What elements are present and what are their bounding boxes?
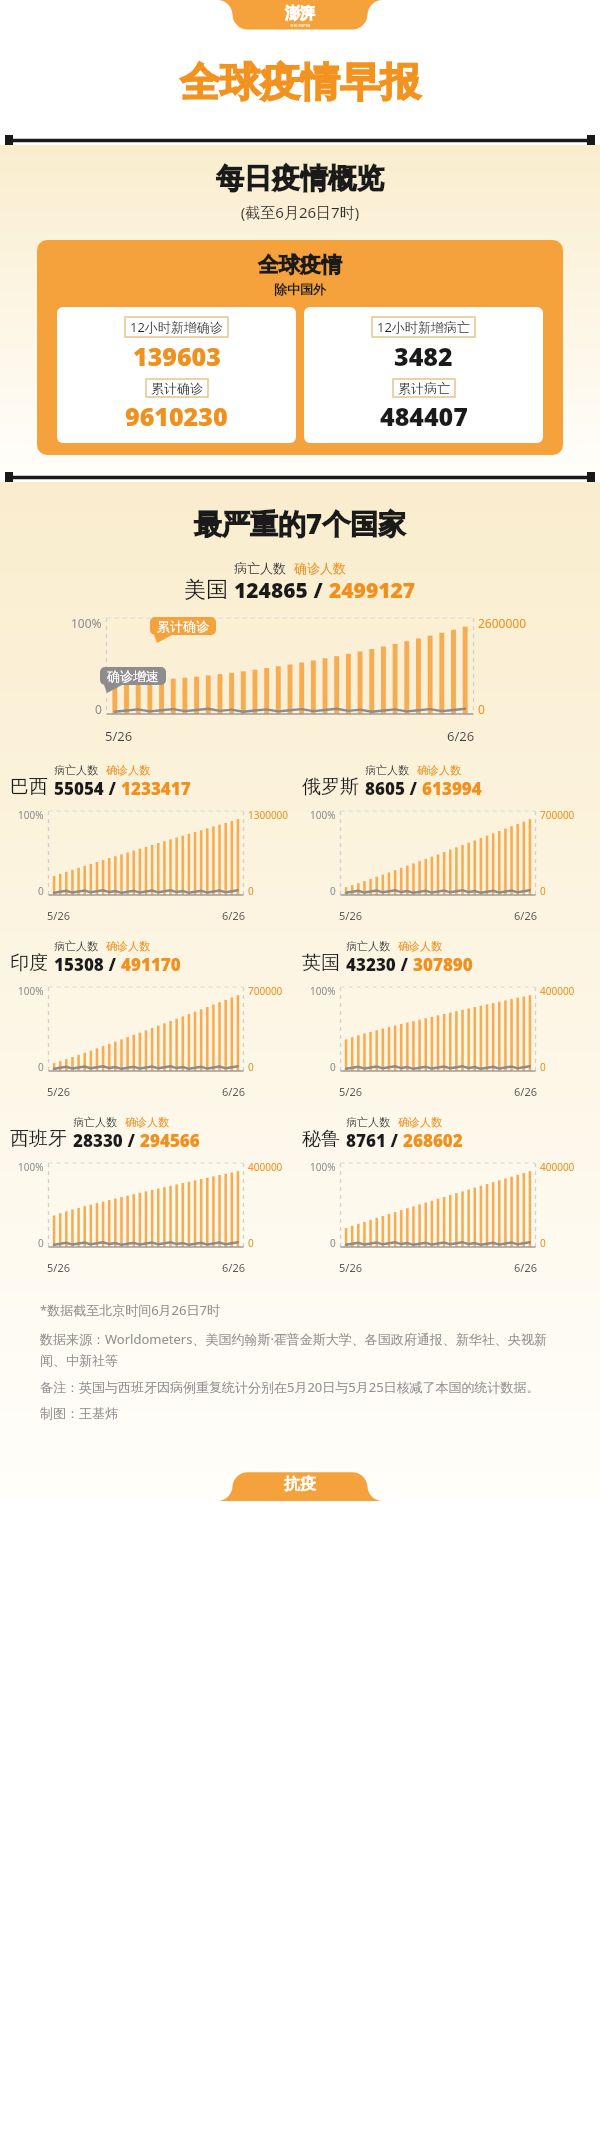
staticText: 100% <box>71 615 102 631</box>
staticText: 1300000 <box>248 808 289 822</box>
staticText: 28330 <box>73 1129 123 1152</box>
staticText: 0 <box>540 1060 546 1074</box>
staticText: 确诊人数 <box>106 939 150 953</box>
staticText: 病亡人数 <box>54 763 98 777</box>
staticText: 307890 <box>413 953 473 976</box>
button[interactable]: 俄罗斯 <box>302 763 590 923</box>
staticText: / <box>308 576 329 605</box>
staticText: 0 <box>248 884 254 898</box>
button[interactable]: 英国 <box>302 939 590 1099</box>
staticText: 全球疫情早报 <box>180 57 420 107</box>
staticText: 43230 <box>346 953 396 976</box>
staticText: 确诊人数 <box>125 1115 169 1129</box>
button[interactable]: 巴西 <box>10 763 298 923</box>
staticText: 累计确诊 <box>151 380 203 396</box>
staticText: 100% <box>18 808 44 822</box>
button[interactable]: 秘鲁 <box>302 1115 590 1275</box>
staticText: 病亡人数 <box>54 939 98 953</box>
staticText: 0 <box>330 884 336 898</box>
staticText: 抗疫 <box>284 1474 316 1494</box>
staticText: 6/26 <box>222 1260 245 1275</box>
staticText: 5/26 <box>339 908 362 923</box>
staticText: 最严重的7个国家 <box>0 504 600 542</box>
staticText: 9610230 <box>125 399 228 433</box>
staticText: 5/26 <box>47 1260 70 1275</box>
staticText: 5/26 <box>47 1084 70 1099</box>
staticText: 0 <box>95 701 102 717</box>
staticText: 6/26 <box>447 727 475 745</box>
staticText: 12小时新增确诊 <box>130 318 223 336</box>
staticText: 268602 <box>403 1129 463 1152</box>
staticText: 100% <box>310 1160 336 1174</box>
staticText: / <box>386 1129 403 1152</box>
staticText: 55054 <box>54 777 104 800</box>
staticText: 病亡人数 <box>365 763 409 777</box>
staticText: 139603 <box>133 339 221 373</box>
staticText: 2600000 <box>478 615 527 631</box>
staticText: 数据来源：Worldometers、美国约翰斯·霍普金斯大学、各国政府通报、新华… <box>40 1330 560 1369</box>
staticText: 除中国外 <box>274 281 326 297</box>
staticText: 6/26 <box>514 1260 537 1275</box>
staticText: 6/26 <box>514 908 537 923</box>
staticText: 确诊人数 <box>294 560 346 576</box>
staticText: (截至6月26日7时) <box>0 202 600 222</box>
staticText: 12小时新增病亡 <box>377 318 470 336</box>
staticText: 6/26 <box>222 908 245 923</box>
staticText: *数据截至北京时间6月26日7时 <box>40 1301 220 1319</box>
staticText: 每日疫情概览 <box>0 161 600 196</box>
staticText: 0 <box>38 1060 44 1074</box>
staticText: 西班牙 <box>10 1127 67 1151</box>
staticText: / <box>104 953 121 976</box>
staticText: 613994 <box>422 777 482 800</box>
staticText: 5/26 <box>47 908 70 923</box>
button[interactable]: 12小时新增病亡 <box>304 307 543 443</box>
staticText: 确诊人数 <box>106 763 150 777</box>
staticText: 400000 <box>248 1160 283 1174</box>
staticText: 484407 <box>380 399 468 433</box>
staticText: 全球疫情 <box>258 252 342 278</box>
staticText: 确诊增速 <box>107 668 159 684</box>
staticText: 确诊人数 <box>417 763 461 777</box>
staticText: 累计确诊 <box>157 618 209 634</box>
staticText: 病亡人数 <box>346 939 390 953</box>
staticText: 俄罗斯 <box>302 775 359 799</box>
staticText: 15308 <box>54 953 104 976</box>
staticText: 0 <box>540 884 546 898</box>
staticText: 1233417 <box>121 777 191 800</box>
staticText: 100% <box>18 1160 44 1174</box>
staticText: / <box>123 1129 140 1152</box>
staticText: 100% <box>310 808 336 822</box>
staticText: 100% <box>310 984 336 998</box>
staticText: 3482 <box>394 339 453 373</box>
staticText: 确诊人数 <box>398 939 442 953</box>
button[interactable]: 12小时新增确诊 <box>57 307 296 443</box>
staticText: 0 <box>38 884 44 898</box>
staticText: 澎湃 <box>285 4 315 23</box>
staticText: / <box>405 777 422 800</box>
staticText: 2499127 <box>329 576 416 605</box>
staticText: 0 <box>478 701 485 717</box>
staticText: 备注：英国与西班牙因病例重复统计分别在5月20日与5月25日核减了本国的统计数据… <box>40 1378 540 1396</box>
staticText: 0 <box>330 1236 336 1250</box>
staticText: 巴西 <box>10 775 48 799</box>
staticText: 6/26 <box>514 1084 537 1099</box>
staticText: 累计病亡 <box>398 380 450 396</box>
staticText: 制图：王基炜 <box>40 1405 118 1421</box>
button[interactable]: The Paper logo <box>0 0 600 42</box>
staticText: 5/26 <box>339 1260 362 1275</box>
staticText: / <box>396 953 413 976</box>
staticText: / <box>104 777 121 800</box>
button[interactable]: 西班牙 <box>10 1115 298 1275</box>
staticText: 294566 <box>140 1129 200 1152</box>
button[interactable]: 全球疫情 <box>37 240 563 455</box>
staticText: 8605 <box>365 777 405 800</box>
staticText: 印度 <box>10 951 48 975</box>
button[interactable]: 美国 <box>0 560 600 745</box>
button[interactable]: 抗疫 <box>0 1461 600 1501</box>
staticText: 491170 <box>121 953 181 976</box>
staticText: 400000 <box>540 984 575 998</box>
button[interactable]: 印度 <box>10 939 298 1099</box>
staticText: 6/26 <box>222 1084 245 1099</box>
staticText: 700000 <box>248 984 283 998</box>
staticText: 0 <box>330 1060 336 1074</box>
